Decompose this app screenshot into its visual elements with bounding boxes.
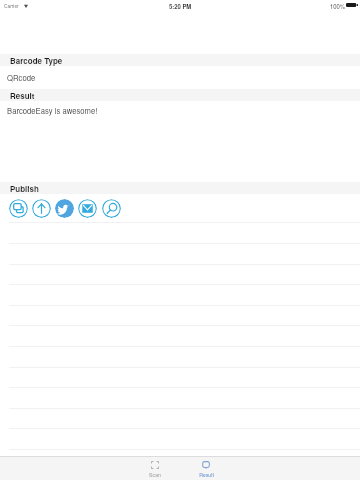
staticText: QRcode bbox=[7, 72, 36, 83]
button[interactable]: Email bbox=[78, 199, 97, 218]
button[interactable]: Share bbox=[32, 199, 51, 218]
staticText: Result bbox=[10, 90, 35, 101]
staticText: Publish bbox=[10, 183, 39, 194]
staticText: Barcode Type bbox=[10, 55, 63, 66]
staticText: Carrier bbox=[4, 2, 19, 9]
staticText: BarcodeEasy is awesome! bbox=[7, 105, 98, 116]
staticText: Scan bbox=[149, 471, 161, 478]
staticText: 5:20 PM bbox=[169, 2, 192, 10]
button[interactable]: Search bbox=[102, 199, 121, 218]
button[interactable]: Copy bbox=[9, 199, 28, 218]
button[interactable]: Result bbox=[194, 461, 218, 478]
button[interactable]: Scan bbox=[143, 461, 167, 478]
button[interactable]: Twitter bbox=[55, 199, 74, 218]
staticText: 100% bbox=[330, 2, 346, 10]
staticText: Result bbox=[199, 471, 214, 478]
